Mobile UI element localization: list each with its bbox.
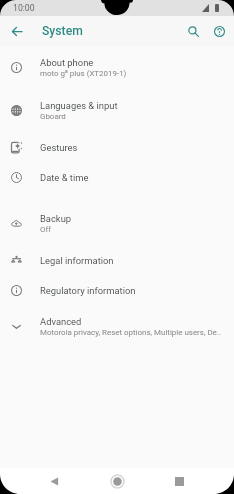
staticText: Backup [40, 213, 72, 224]
button[interactable]: Home [104, 468, 130, 494]
button[interactable]: Backup [0, 202, 234, 245]
staticText: System [42, 24, 83, 38]
staticText: Advanced [40, 316, 82, 327]
button[interactable]: Advanced [0, 305, 234, 348]
button[interactable]: Recent apps [166, 468, 192, 494]
staticText: Gestures [40, 142, 78, 153]
staticText: 10:00 [13, 3, 35, 13]
staticText: Languages & input [40, 100, 118, 111]
button[interactable]: Back [41, 468, 67, 494]
staticText: Gboard [40, 112, 66, 121]
staticText: moto g⁸ plus (XT2019-1) [40, 69, 127, 78]
staticText: Date & time [40, 172, 89, 183]
button[interactable]: Regulatory information [0, 275, 234, 305]
button[interactable]: Navigate up [0, 16, 33, 46]
staticText: Off [40, 225, 51, 234]
button[interactable]: Gestures [0, 132, 234, 162]
staticText: About phone [40, 57, 94, 68]
button[interactable]: About phone [0, 46, 234, 89]
staticText: Motorola privacy, Reset options, Multipl… [40, 328, 222, 337]
staticText: Regulatory information [40, 285, 136, 296]
button[interactable]: Legal information [0, 245, 234, 275]
button[interactable]: Help [206, 16, 232, 46]
button[interactable]: Search [180, 16, 206, 46]
button[interactable]: Date & time [0, 162, 234, 192]
staticText: Legal information [40, 255, 114, 266]
button[interactable]: Languages & input [0, 89, 234, 132]
